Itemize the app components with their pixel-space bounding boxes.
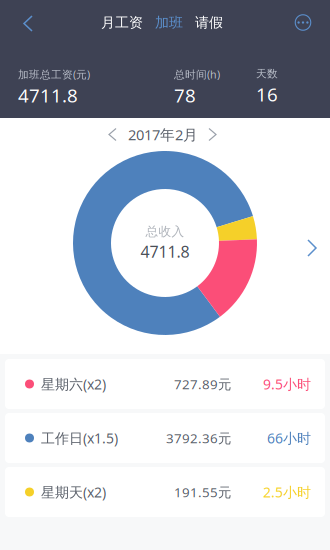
- staticText: 727.89元: [174, 375, 231, 393]
- staticText: 总时间(h): [174, 67, 220, 81]
- button[interactable]: Next month: [198, 121, 225, 147]
- staticText: 月工资: [101, 14, 143, 31]
- staticText: 星期六(x2): [41, 374, 106, 394]
- button[interactable]: 工作日(x1.5): [5, 413, 325, 463]
- staticText: 2.5小时: [263, 482, 311, 502]
- button[interactable]: 星期六(x2): [5, 359, 325, 409]
- button[interactable]: 星期天(x2): [5, 467, 325, 517]
- staticText: 星期天(x2): [41, 482, 106, 502]
- button[interactable]: Back: [0, 0, 50, 45]
- staticText: 加班总工资(元): [18, 67, 90, 81]
- staticText: 4711.8: [18, 82, 78, 108]
- staticText: 9.5小时: [263, 374, 311, 394]
- button[interactable]: Next chart: [298, 232, 326, 264]
- button[interactable]: 请假: [189, 5, 229, 40]
- button[interactable]: 月工资: [95, 5, 149, 40]
- staticText: 天数: [256, 67, 278, 80]
- staticText: 66小时: [267, 428, 311, 448]
- staticText: 191.55元: [174, 483, 231, 501]
- button[interactable]: Previous month: [100, 121, 128, 147]
- staticText: 工作日(x1.5): [41, 428, 118, 448]
- staticText: 78: [174, 82, 196, 108]
- staticText: 2017年2月: [128, 124, 198, 144]
- button[interactable]: 加班: [149, 5, 189, 40]
- staticText: 请假: [195, 14, 223, 31]
- staticText: 3792.36元: [166, 429, 231, 447]
- staticText: 16: [256, 81, 278, 107]
- staticText: 加班: [155, 14, 183, 31]
- staticText: 4711.8: [140, 241, 189, 262]
- button[interactable]: More options: [284, 3, 330, 41]
- staticText: 总收入: [145, 224, 184, 240]
